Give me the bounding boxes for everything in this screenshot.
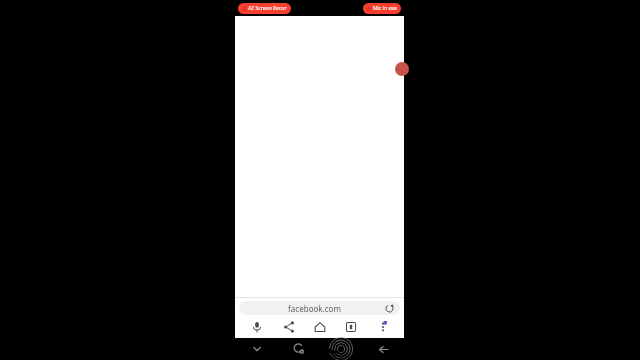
button[interactable]: facebook.com xyxy=(239,301,400,315)
button[interactable]: Mic in use xyxy=(363,3,401,14)
button[interactable]: Back xyxy=(362,338,404,360)
staticText: AZ Screen Recor xyxy=(248,5,287,12)
button[interactable]: Home xyxy=(310,317,329,336)
button[interactable]: Reload xyxy=(384,303,394,313)
button[interactable]: Voice search xyxy=(247,317,266,336)
button[interactable]: Recorder controls xyxy=(395,62,409,76)
staticText: facebook.com xyxy=(245,303,384,314)
button[interactable]: Hide keyboard xyxy=(235,338,278,360)
button[interactable]: Fingerprint xyxy=(320,338,362,360)
button[interactable]: AZ Screen Recor xyxy=(238,3,291,14)
staticText: Mic in use xyxy=(373,5,397,12)
button[interactable]: Switch tabs, 4 open xyxy=(341,317,360,336)
button[interactable]: Rotation lock xyxy=(278,338,320,360)
button[interactable]: More options xyxy=(373,317,392,336)
button[interactable]: Share xyxy=(279,317,298,336)
